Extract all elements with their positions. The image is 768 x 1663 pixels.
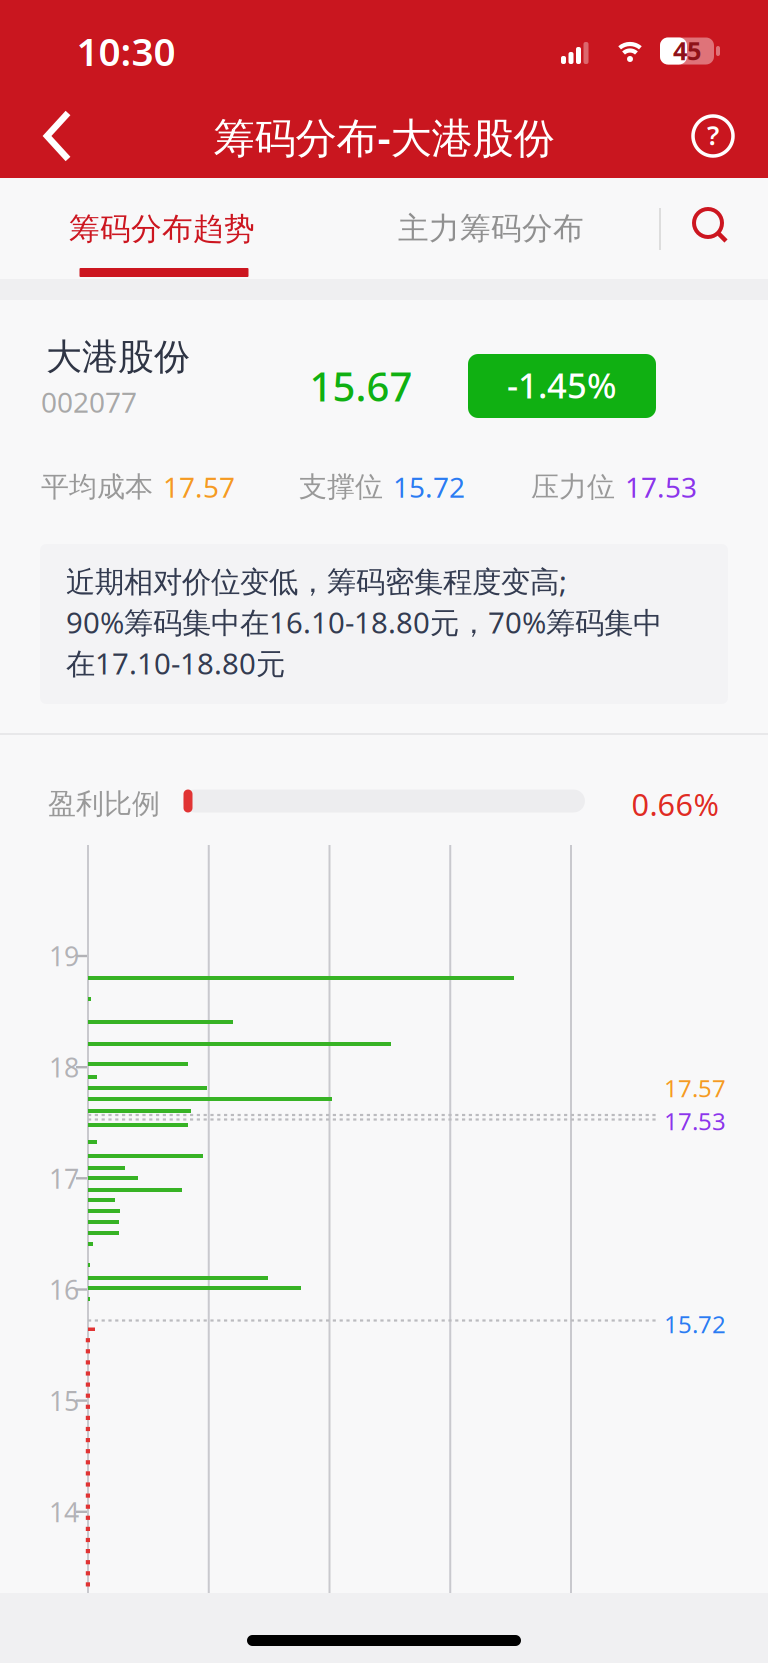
staticText: ? bbox=[707, 117, 719, 153]
button[interactable]: Back bbox=[28, 107, 86, 165]
staticText: -1.45% bbox=[507, 362, 617, 408]
staticText: 主力筹码分布 bbox=[398, 210, 584, 247]
staticText: 15 bbox=[49, 1383, 79, 1418]
staticText: 15.67 bbox=[309, 359, 412, 412]
staticText: 支撑位 bbox=[299, 470, 383, 504]
staticText: 17 bbox=[49, 1161, 79, 1196]
staticText: 14 bbox=[49, 1494, 79, 1529]
staticText: 近期相对价位变低，筹码密集程度变高; bbox=[66, 561, 567, 600]
staticText: 压力位 bbox=[531, 470, 615, 504]
staticText: 002077 bbox=[41, 383, 137, 421]
staticText: 筹码分布-大港股份 bbox=[213, 110, 554, 164]
staticText: 17.57 bbox=[664, 1072, 726, 1104]
staticText: 在17.10-18.80元 bbox=[66, 643, 285, 682]
staticText: 0.66% bbox=[631, 784, 718, 824]
button[interactable]: 主力筹码分布 bbox=[331, 178, 651, 279]
button[interactable]: Help bbox=[687, 110, 739, 162]
staticText: 16 bbox=[49, 1272, 79, 1307]
staticText: 17.53 bbox=[664, 1105, 726, 1137]
button[interactable]: Search bbox=[683, 178, 739, 279]
staticText: 17.53 bbox=[625, 468, 697, 506]
staticText: 筹码分布趋势 bbox=[69, 210, 255, 248]
staticText: 15.72 bbox=[664, 1308, 726, 1340]
staticText: 15.72 bbox=[393, 468, 465, 506]
staticText: 90%筹码集中在16.10-18.80元，70%筹码集中 bbox=[66, 602, 662, 641]
button[interactable]: 筹码分布趋势 bbox=[50, 178, 274, 279]
staticText: 19 bbox=[49, 938, 79, 974]
staticText: 10:30 bbox=[76, 25, 175, 77]
staticText: 盈利比例 bbox=[48, 787, 160, 821]
staticText: 大港股份 bbox=[46, 335, 190, 379]
staticText: 18 bbox=[49, 1049, 79, 1085]
staticText: 45 bbox=[673, 34, 701, 67]
staticText: 17.57 bbox=[163, 468, 235, 506]
staticText: 平均成本 bbox=[41, 470, 153, 504]
